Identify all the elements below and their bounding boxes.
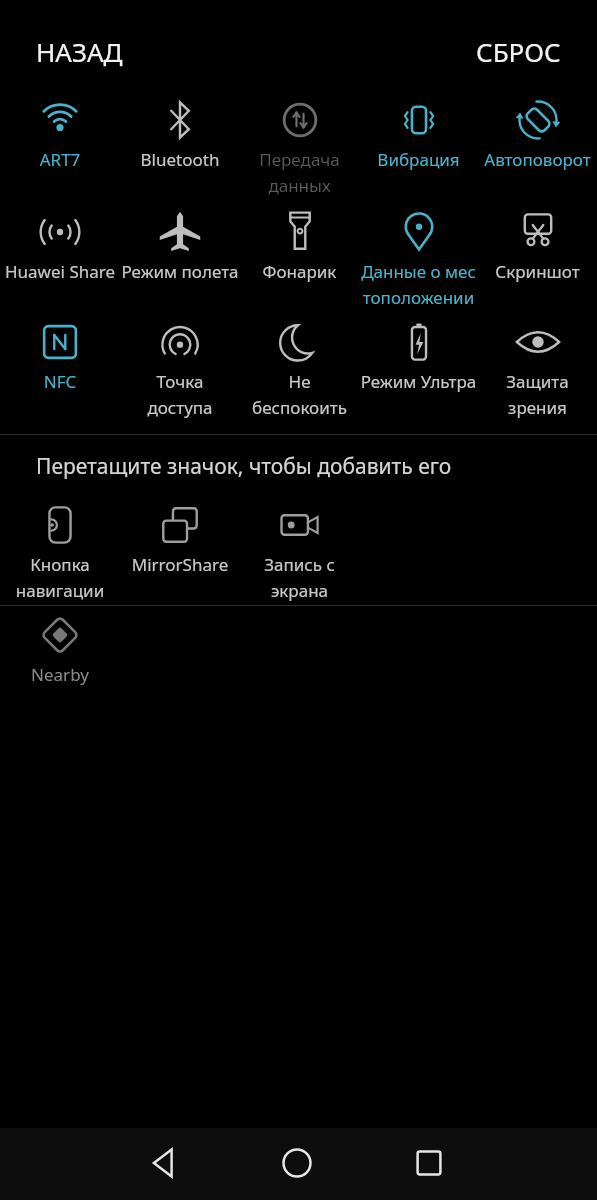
staticText: Bluetooth: [120, 148, 240, 171]
button[interactable]: NFC: [0, 320, 120, 393]
staticText: Запись с экрана: [240, 553, 359, 602]
staticText: Не беспокоить: [240, 370, 359, 419]
staticText: Данные о мес тоположении: [359, 260, 478, 309]
staticText: Режим Ультра: [359, 370, 478, 393]
button[interactable]: Защита зрения: [478, 320, 597, 419]
button[interactable]: [414, 1148, 444, 1178]
staticText: Huawei Share: [0, 260, 120, 283]
staticText: Nearby: [0, 663, 120, 686]
staticText: Кнопка навигации: [0, 553, 120, 602]
staticText: Скриншот: [478, 260, 597, 283]
staticText: Точка доступа: [120, 370, 240, 419]
button[interactable]: Кнопка навигации: [0, 503, 120, 602]
staticText: Перетащите значок, чтобы добавить его: [36, 452, 452, 481]
button[interactable]: Bluetooth: [120, 98, 240, 171]
button[interactable]: [282, 1148, 312, 1178]
button[interactable]: Режим Ультра: [359, 320, 478, 393]
staticText: Автоповорот: [478, 148, 597, 171]
button[interactable]: Автоповорот: [478, 98, 597, 171]
button[interactable]: Запись с экрана: [240, 503, 359, 602]
button[interactable]: Huawei Share: [0, 210, 120, 283]
button[interactable]: Вибрация: [359, 98, 478, 171]
staticText: Режим полета: [120, 260, 240, 283]
staticText: Фонарик: [240, 260, 359, 283]
button[interactable]: [150, 1148, 180, 1178]
button[interactable]: Nearby: [0, 613, 120, 686]
staticText: MirrorShare: [120, 553, 240, 576]
staticText: ART7: [0, 148, 120, 171]
staticText: NFC: [0, 370, 120, 393]
button[interactable]: MirrorShare: [120, 503, 240, 576]
button[interactable]: Фонарик: [240, 210, 359, 283]
staticText: Защита зрения: [478, 370, 597, 419]
staticText: Передача данных: [240, 148, 359, 197]
button[interactable]: ART7: [0, 98, 120, 171]
button[interactable]: Не беспокоить: [240, 320, 359, 419]
button[interactable]: Скриншот: [478, 210, 597, 283]
button[interactable]: Передача данных: [240, 98, 359, 197]
button[interactable]: Точка доступа: [120, 320, 240, 419]
button[interactable]: НАЗАД: [36, 34, 123, 69]
button[interactable]: Данные о мес тоположении: [359, 210, 478, 309]
button[interactable]: СБРОС: [476, 34, 561, 69]
staticText: Вибрация: [359, 148, 478, 171]
button[interactable]: Режим полета: [120, 210, 240, 283]
